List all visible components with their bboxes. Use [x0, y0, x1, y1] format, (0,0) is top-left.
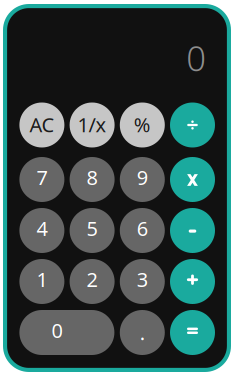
button[interactable]: 9 — [120, 157, 165, 202]
button[interactable]: 7 — [19, 157, 64, 202]
staticText: 2 — [87, 266, 98, 293]
staticText: 0 — [51, 317, 62, 344]
button[interactable]: AC — [19, 102, 64, 147]
button[interactable]: 3 — [120, 259, 165, 304]
button[interactable]: % — [120, 102, 165, 147]
staticText: 0 — [186, 35, 206, 81]
staticText: 1/x — [78, 111, 107, 138]
button[interactable]: . — [120, 310, 165, 355]
button[interactable]: Plus — [170, 259, 215, 304]
staticText: 4 — [36, 215, 47, 242]
button[interactable]: 4 — [19, 208, 64, 253]
staticText: 9 — [137, 164, 148, 191]
staticText: AC — [29, 111, 54, 138]
staticText: 1 — [36, 266, 47, 293]
staticText: 6 — [137, 215, 148, 242]
button[interactable]: 1/x — [70, 102, 115, 147]
staticText: 5 — [87, 215, 98, 242]
button[interactable]: 6 — [120, 208, 165, 253]
button[interactable]: 2 — [70, 259, 115, 304]
button[interactable]: 5 — [70, 208, 115, 253]
staticText: 7 — [36, 164, 47, 191]
button[interactable]: 1 — [19, 259, 64, 304]
staticText: . — [140, 319, 145, 346]
button[interactable]: Divide — [170, 102, 215, 147]
staticText: 8 — [87, 164, 98, 191]
button[interactable]: Equals — [170, 310, 215, 355]
staticText: 3 — [137, 266, 148, 293]
button[interactable]: 8 — [70, 157, 115, 202]
button[interactable]: Multiply — [170, 157, 215, 202]
button[interactable]: 0 — [19, 310, 114, 355]
staticText: % — [134, 111, 151, 138]
button[interactable]: Minus — [170, 208, 215, 253]
